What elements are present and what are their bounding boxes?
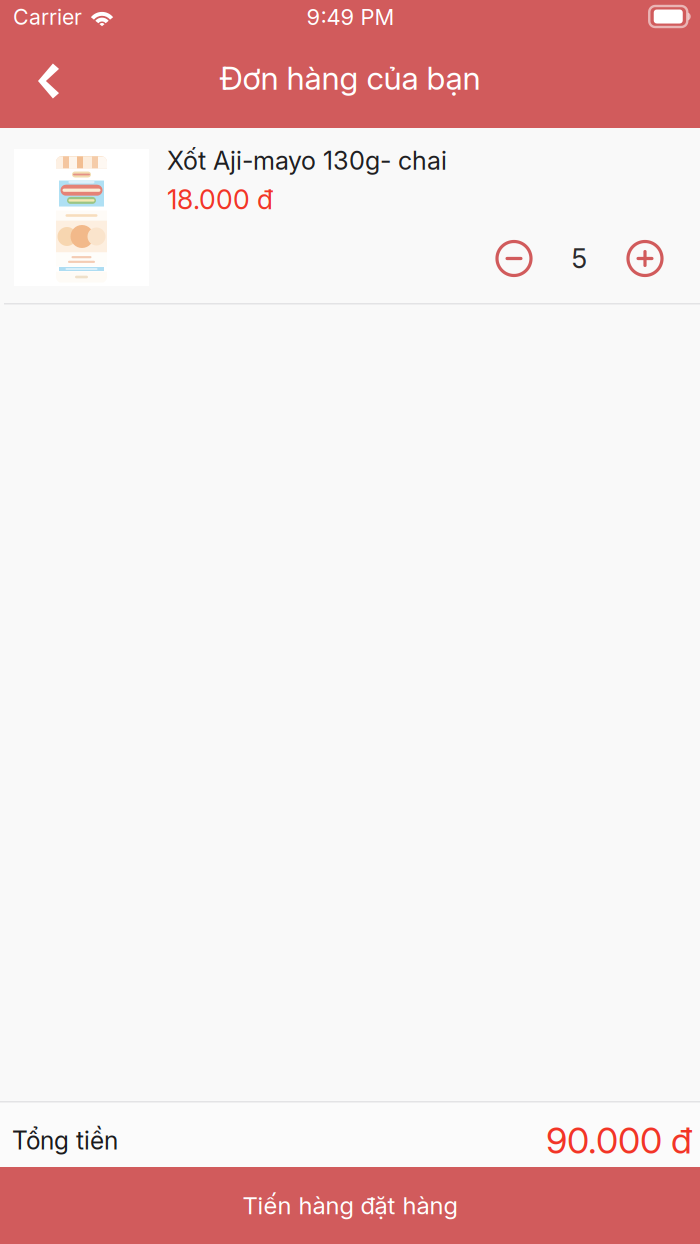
staticText: 90.000 đ xyxy=(546,1119,692,1162)
button[interactable]: Xốt Aji-mayo 130g- chai xyxy=(0,128,700,303)
button[interactable]: Tiến hàng đặt hàng xyxy=(0,1167,700,1244)
staticText: 18.000 đ xyxy=(167,183,273,216)
staticText: Đơn hàng của bạn xyxy=(219,59,480,97)
button[interactable]: Decrease quantity xyxy=(488,232,540,284)
button[interactable]: Increase quantity xyxy=(619,232,671,284)
staticText: 5 xyxy=(571,242,587,275)
staticText: Carrier xyxy=(13,4,82,30)
staticText: Xốt Aji-mayo 130g- chai xyxy=(167,145,447,176)
button[interactable]: Back xyxy=(18,49,79,113)
staticText: Tổng tiền xyxy=(12,1126,118,1155)
staticText: 9:49 PM xyxy=(306,4,394,30)
staticText: Tiến hàng đặt hàng xyxy=(242,1191,457,1220)
